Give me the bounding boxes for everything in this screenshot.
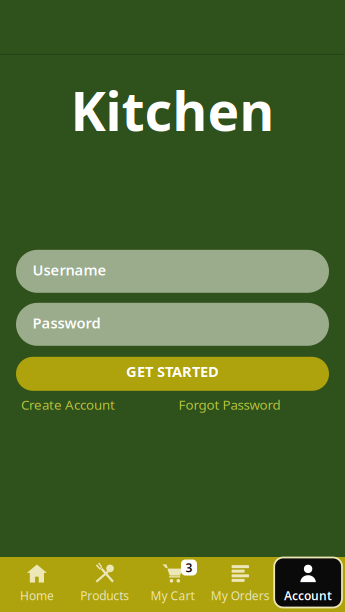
staticText: My Cart	[150, 587, 194, 603]
button[interactable]: GET STARTED	[16, 357, 329, 391]
staticText: Password	[32, 313, 100, 333]
button[interactable]: Account	[274, 557, 342, 612]
staticText: Kitchen	[70, 75, 274, 146]
button[interactable]: My Orders	[206, 557, 274, 612]
staticText: Forgot Password	[178, 396, 280, 413]
button[interactable]: 3	[139, 557, 206, 612]
staticText: Products	[80, 587, 129, 603]
staticText: Home	[20, 587, 54, 603]
staticText: 3	[185, 559, 192, 575]
button[interactable]: Home	[3, 557, 71, 612]
button[interactable]: Create Account	[16, 396, 172, 413]
staticText: Username	[32, 260, 106, 280]
button[interactable]: Products	[71, 557, 139, 612]
staticText: My Orders	[211, 587, 270, 603]
staticText: GET STARTED	[126, 362, 219, 381]
staticText: Account	[284, 587, 332, 603]
button[interactable]: Forgot Password	[172, 396, 329, 413]
staticText: Create Account	[21, 396, 115, 413]
